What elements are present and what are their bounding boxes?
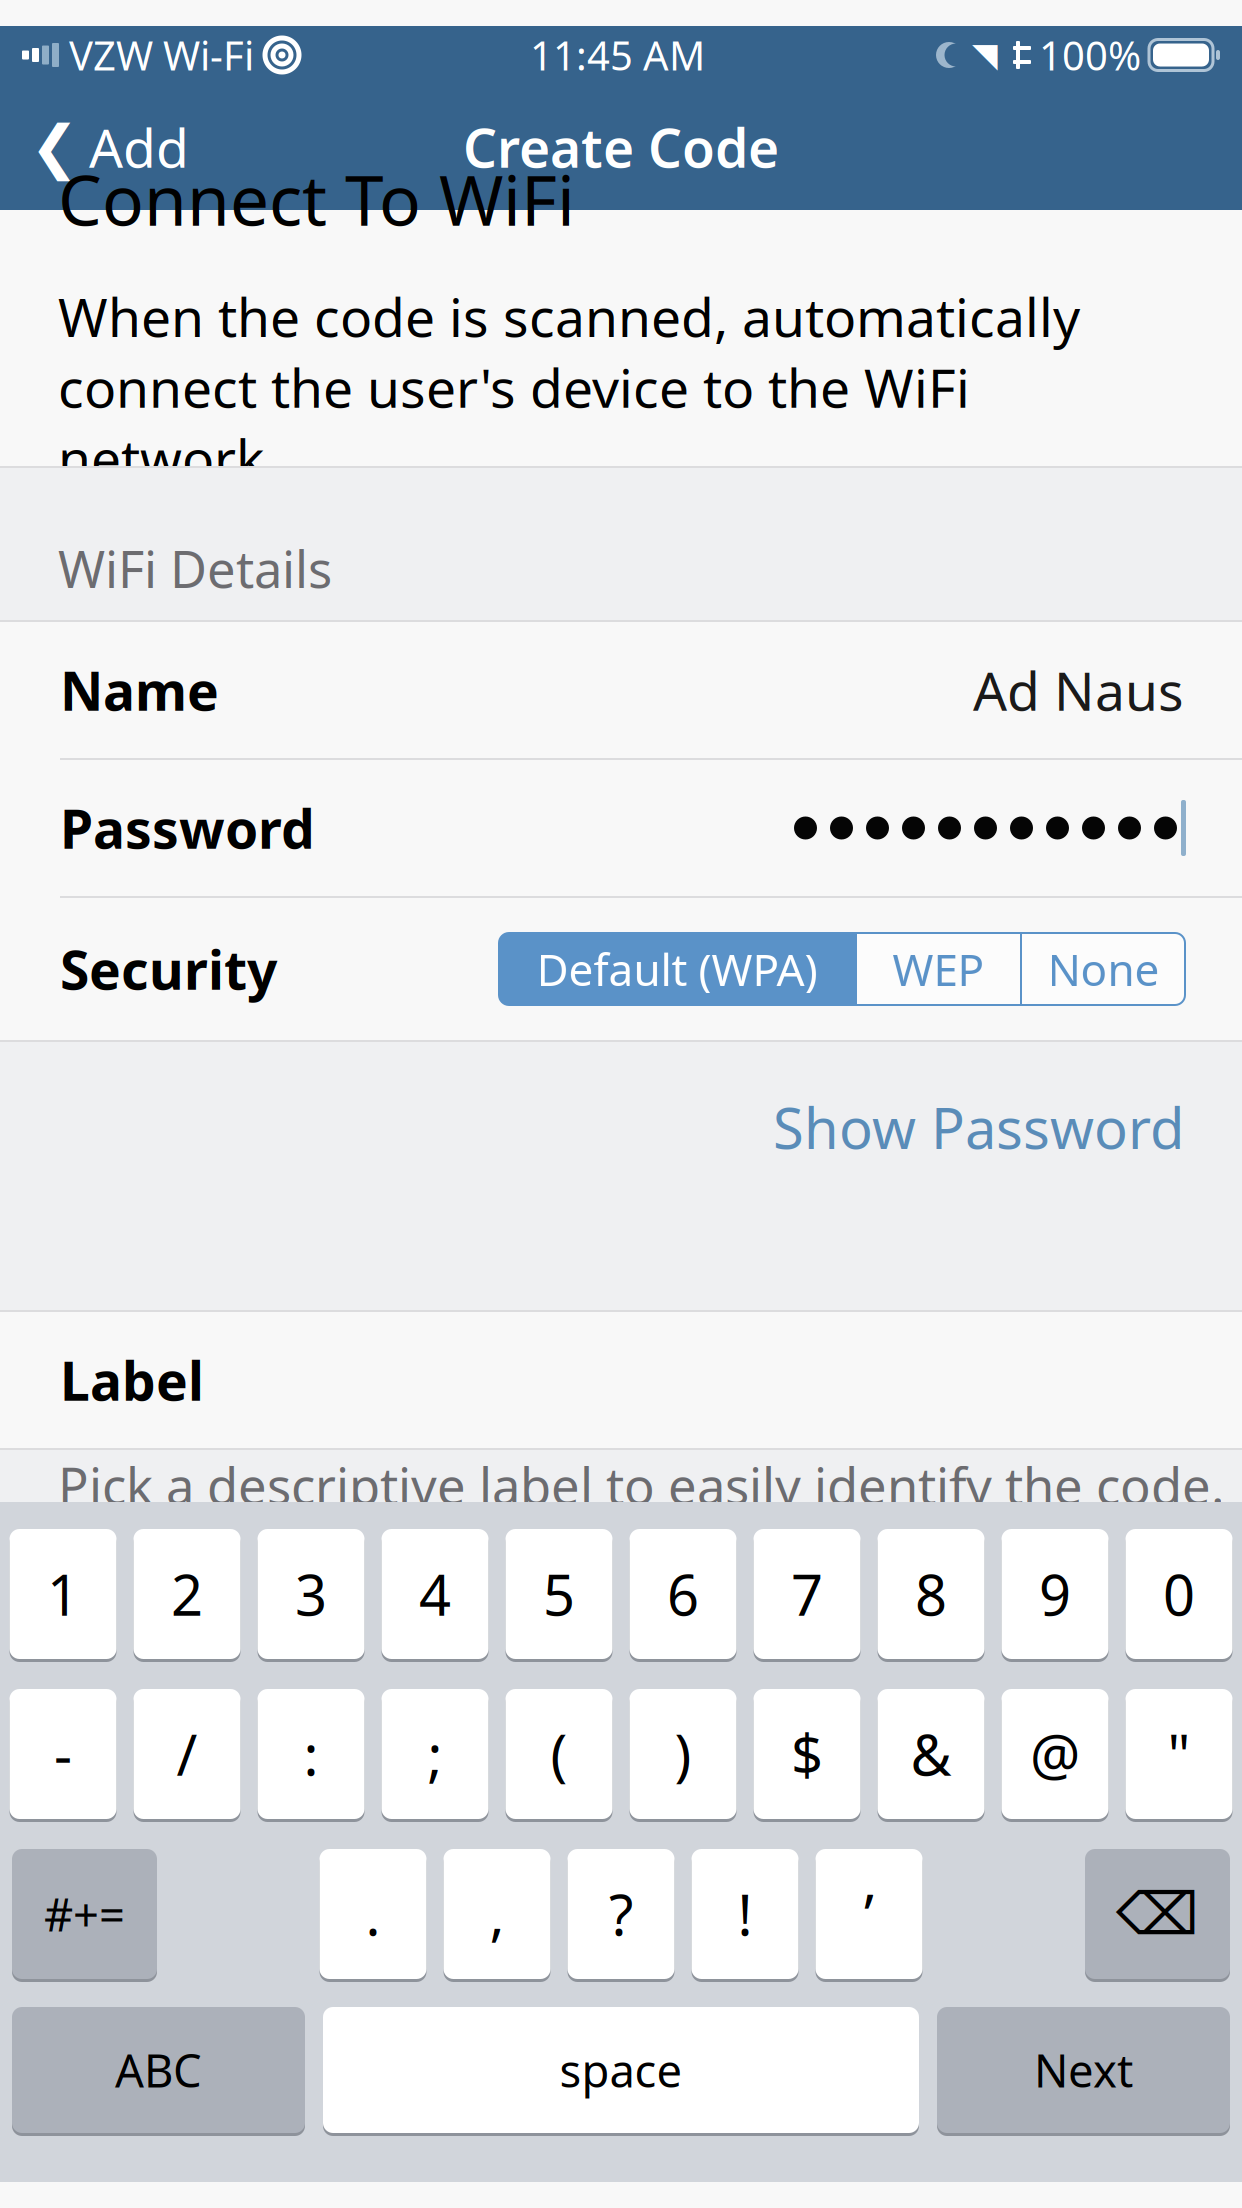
staticText: ,	[489, 1877, 504, 1951]
button[interactable]: 3	[257, 1526, 364, 1662]
button[interactable]: -	[9, 1686, 116, 1822]
staticText: 11:45 AM	[530, 28, 705, 81]
staticText: $	[791, 1717, 823, 1791]
staticText: ’	[864, 1877, 874, 1951]
staticText: Security	[60, 934, 277, 1004]
staticText: ◥	[972, 36, 998, 74]
staticText: #+=	[44, 1884, 125, 1944]
button[interactable]: #+=	[12, 1846, 157, 1982]
staticText: 100%	[1039, 28, 1141, 81]
button[interactable]: 9	[1001, 1526, 1108, 1662]
staticText: space	[559, 2040, 682, 2100]
button[interactable]: ’	[815, 1846, 922, 1982]
staticText: Pick a descriptive label to easily ident…	[58, 1451, 1225, 1519]
button[interactable]: 7	[753, 1526, 860, 1662]
button[interactable]: .	[319, 1846, 426, 1982]
button[interactable]: 4	[381, 1526, 488, 1662]
staticText: 4	[419, 1557, 451, 1631]
button[interactable]: Default (WPA)	[499, 933, 855, 1005]
staticText: -	[54, 1717, 72, 1791]
staticText: @	[1030, 1717, 1080, 1791]
staticText: 2	[171, 1557, 203, 1631]
button[interactable]: ,	[443, 1846, 550, 1982]
button[interactable]: :	[257, 1686, 364, 1822]
button[interactable]: None	[1022, 933, 1185, 1005]
button[interactable]: WEP	[857, 933, 1020, 1005]
button[interactable]: Show Password	[753, 1076, 1242, 1178]
staticText: ;	[427, 1717, 442, 1791]
button[interactable]: ❮	[0, 109, 209, 185]
staticText: 6	[667, 1557, 699, 1631]
staticText: Password	[60, 793, 315, 863]
button[interactable]: ?	[567, 1846, 674, 1982]
staticText: ⌫	[1116, 1881, 1199, 1947]
button[interactable]: (	[505, 1686, 612, 1822]
button[interactable]: Delete	[1085, 1846, 1230, 1982]
button[interactable]: 5	[505, 1526, 612, 1662]
staticText: ABC	[115, 2040, 202, 2100]
staticText: Connect To WiFi	[58, 153, 575, 245]
button[interactable]: Next	[937, 2004, 1230, 2136]
button[interactable]: !	[691, 1846, 798, 1982]
staticText: Show Password	[773, 1090, 1184, 1164]
staticText: WEP	[892, 940, 984, 998]
staticText: Create Code	[463, 112, 779, 182]
staticText: 3	[295, 1557, 327, 1631]
staticText: /	[176, 1717, 197, 1791]
button[interactable]: @	[1001, 1686, 1108, 1822]
staticText: WiFi Details	[58, 535, 332, 602]
button[interactable]: 1	[9, 1526, 116, 1662]
button[interactable]: $	[753, 1686, 860, 1822]
staticText: "	[1167, 1717, 1190, 1791]
staticText: 9	[1039, 1557, 1071, 1631]
staticText: Default (WPA)	[536, 940, 817, 998]
staticText: 5	[543, 1557, 575, 1631]
button[interactable]: )	[629, 1686, 736, 1822]
button[interactable]: "	[1125, 1686, 1232, 1822]
staticText: Add	[89, 112, 189, 182]
button[interactable]: /	[133, 1686, 240, 1822]
staticText: (	[550, 1717, 567, 1791]
staticText: Label	[60, 1345, 204, 1415]
staticText: 8	[915, 1557, 947, 1631]
button[interactable]: 6	[629, 1526, 736, 1662]
staticText: When the code is scanned, automatically …	[58, 281, 1080, 493]
staticText: Ad Naus	[973, 655, 1184, 725]
button[interactable]: 8	[877, 1526, 984, 1662]
staticText: VZW Wi-Fi	[69, 28, 254, 81]
button[interactable]: ABC	[12, 2004, 305, 2136]
staticText: )	[674, 1717, 691, 1791]
staticText: ❮	[30, 114, 79, 180]
staticText: 1	[47, 1557, 79, 1631]
staticText: :	[303, 1717, 318, 1791]
staticText: .	[365, 1877, 380, 1951]
button[interactable]: 2	[133, 1526, 240, 1662]
staticText: &	[910, 1717, 951, 1791]
staticText: Next	[1034, 2040, 1133, 2100]
staticText: 7	[791, 1557, 823, 1631]
button[interactable]: 0	[1125, 1526, 1232, 1662]
button[interactable]: space	[323, 2004, 919, 2136]
staticText: !	[737, 1877, 752, 1951]
staticText: 0	[1163, 1557, 1195, 1631]
button[interactable]: &	[877, 1686, 984, 1822]
staticText: None	[1047, 940, 1159, 998]
button[interactable]: ;	[381, 1686, 488, 1822]
staticText: ?	[609, 1877, 633, 1951]
staticText: Name	[60, 655, 219, 725]
